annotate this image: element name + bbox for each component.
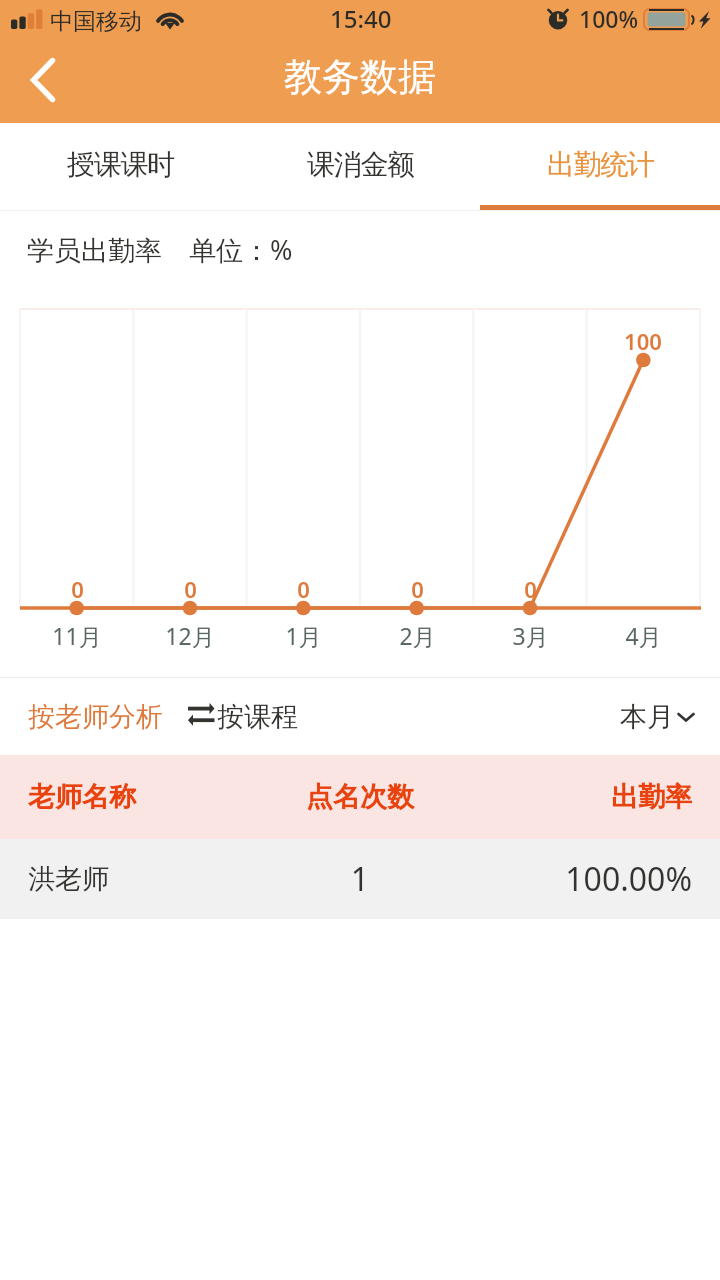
staticText: 0 [184,574,197,604]
staticText: 学员出勤率 单位：% [27,231,293,268]
staticText: 100.00% [480,857,692,901]
staticText: 中国移动 [50,7,142,36]
staticText: 0 [297,574,310,604]
staticText: 出勤统计 [547,147,654,182]
staticText: 100 [624,326,662,356]
staticText: 课消金额 [307,147,414,182]
staticText: 0 [411,574,424,604]
staticText: 本月 [620,700,674,734]
button[interactable]: 授课课时 [0,123,240,211]
button[interactable]: 按老师分析 [28,678,163,755]
button[interactable]: 洪老师 [0,839,720,919]
button[interactable]: 本月 [600,678,720,755]
button[interactable]: Back [0,44,86,123]
button[interactable]: 课消金额 [240,123,480,211]
staticText: 3月 [512,620,549,651]
staticText: 按老师分析 [28,700,163,734]
staticText: 100% [579,3,639,34]
staticText: 授课课时 [67,147,174,182]
staticText: 11月 [52,620,102,651]
staticText: 0 [71,574,84,604]
staticText: 15:40 [330,2,392,35]
staticText: 4月 [625,620,662,651]
staticText: 0 [524,574,537,604]
staticText: 洪老师 [28,862,240,896]
button[interactable]: 出勤统计 [480,123,720,211]
staticText: 出勤率 [480,780,692,814]
staticText: 1月 [285,620,322,651]
staticText: 点名次数 [240,780,480,814]
staticText: 1 [240,857,480,901]
staticText: 教务数据 [284,53,436,101]
staticText: 按课程 [217,700,298,734]
staticText: 2月 [399,620,436,651]
button[interactable]: 按课程 [190,678,298,755]
staticText: 老师名称 [28,780,240,814]
staticText: 12月 [165,620,215,651]
